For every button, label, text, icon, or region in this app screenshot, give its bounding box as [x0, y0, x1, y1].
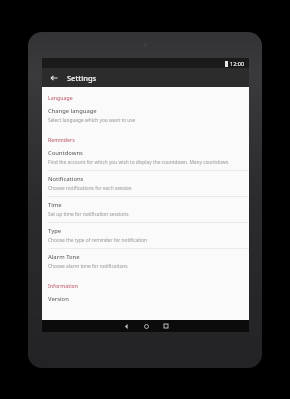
button[interactable]: Alarm Tone — [42, 249, 249, 274]
button[interactable]: Notifications — [42, 171, 249, 196]
staticText: Language — [48, 94, 73, 101]
staticText: Countdowns — [48, 149, 83, 157]
staticText: Reminders — [48, 136, 75, 143]
staticText: Alarm Tone — [48, 253, 80, 261]
staticText: Choose alarm tone for notifications — [48, 263, 128, 270]
button[interactable]: Type — [42, 223, 249, 248]
button[interactable]: Recent apps — [156, 320, 176, 332]
button[interactable]: Version — [42, 291, 249, 307]
staticText: Choose notifications for each session — [48, 185, 132, 192]
button[interactable]: Home — [136, 320, 156, 332]
staticText: Notifications — [48, 175, 84, 183]
staticText: Find the account for which you wish to d… — [48, 159, 243, 166]
button[interactable]: Countdowns — [42, 145, 249, 170]
staticText: Information — [48, 282, 78, 289]
staticText: Type — [48, 227, 62, 235]
button[interactable]: Back — [116, 320, 136, 332]
staticText: Change language — [48, 107, 97, 115]
staticText: Select language which you want to use — [48, 117, 136, 124]
button[interactable]: Time — [42, 197, 249, 222]
staticText: Version — [48, 295, 69, 303]
staticText: Set up time for notification sessions — [48, 211, 129, 218]
staticText: Choose the type of reminder for notifica… — [48, 237, 148, 244]
staticText: Settings — [67, 73, 97, 83]
staticText: Time — [48, 201, 62, 209]
button[interactable]: Change language — [42, 103, 249, 128]
staticText: 12:00 — [230, 60, 245, 67]
button[interactable]: Back — [47, 71, 61, 85]
